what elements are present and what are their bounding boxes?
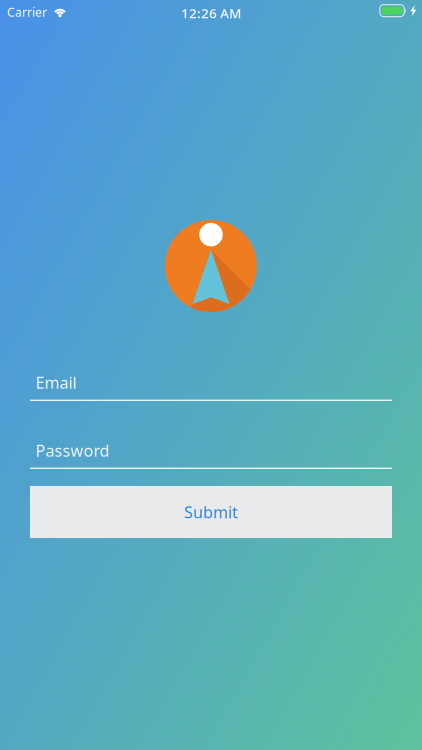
staticText: Password <box>35 440 109 461</box>
button[interactable]: Password <box>30 423 392 469</box>
staticText: Submit <box>184 501 238 523</box>
button[interactable]: Email <box>30 355 392 401</box>
staticText: Email <box>35 372 76 393</box>
button[interactable]: Submit <box>30 486 392 538</box>
staticText: Carrier <box>7 4 47 20</box>
staticText: 12:26 AM <box>181 4 241 22</box>
